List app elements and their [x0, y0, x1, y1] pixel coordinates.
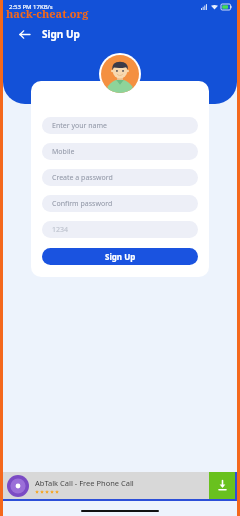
staticText: Sign Up: [105, 251, 136, 262]
staticText: 2:53 PM 17KB/s: [9, 3, 53, 11]
button[interactable]: Back: [14, 24, 34, 44]
staticText: Create a password: [52, 173, 113, 183]
staticText: Enter your name: [52, 121, 107, 131]
button[interactable]: Enter your name: [42, 117, 198, 134]
staticText: Mobile: [52, 147, 75, 157]
button[interactable]: Create a password: [42, 169, 198, 186]
staticText: Sign Up: [42, 27, 80, 41]
button[interactable]: Install: [209, 472, 235, 499]
staticText: AbTalk Call - Free Phone Call: [35, 478, 134, 488]
staticText: Confirm password: [52, 199, 113, 209]
button[interactable]: Mobile: [42, 143, 198, 160]
button[interactable]: Confirm password: [42, 195, 198, 212]
button[interactable]: Sign Up: [42, 248, 198, 265]
staticText: 1234: [52, 225, 69, 235]
button[interactable]: 1234: [42, 221, 198, 238]
other: Profile photo: [101, 55, 139, 93]
button[interactable]: AbTalk Call - Free Phone Call: [3, 472, 235, 499]
staticText: hack-cheat.org: [6, 6, 89, 21]
